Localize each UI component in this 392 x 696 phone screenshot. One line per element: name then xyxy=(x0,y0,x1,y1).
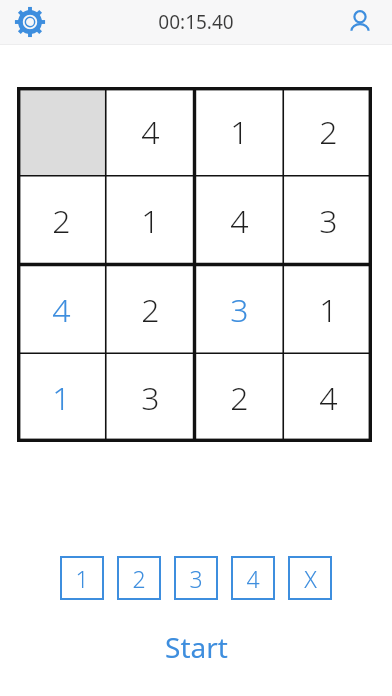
button[interactable]: 3 xyxy=(106,354,195,442)
button[interactable]: 3 xyxy=(174,556,218,600)
staticText: 2 xyxy=(141,288,160,332)
staticText: 1 xyxy=(319,288,338,332)
button[interactable]: 1 xyxy=(195,87,284,176)
button[interactable]: 1 xyxy=(106,176,195,265)
staticText: 00:15.40 xyxy=(158,9,234,35)
staticText: X xyxy=(304,563,317,594)
button[interactable]: Settings xyxy=(12,4,48,40)
button[interactable]: 4 xyxy=(106,87,195,176)
button[interactable]: 4 xyxy=(195,176,284,265)
staticText: 4 xyxy=(230,199,249,243)
button[interactable] xyxy=(17,87,106,176)
button[interactable]: 1 xyxy=(284,265,372,354)
staticText: 3 xyxy=(189,563,203,594)
button[interactable]: 3 xyxy=(195,265,284,354)
button[interactable]: X xyxy=(288,556,332,600)
button[interactable]: 4 xyxy=(231,556,275,600)
staticText: 1 xyxy=(75,563,89,594)
button[interactable]: 3 xyxy=(284,176,372,265)
button[interactable]: 4 xyxy=(17,265,106,354)
staticText: 4 xyxy=(246,563,260,594)
button[interactable]: 2 xyxy=(195,354,284,442)
button[interactable]: 1 xyxy=(60,556,104,600)
button[interactable]: 1 xyxy=(17,354,106,442)
staticText: 2 xyxy=(132,563,146,594)
button[interactable]: 2 xyxy=(17,176,106,265)
staticText: 1 xyxy=(230,110,249,154)
staticText: 3 xyxy=(141,376,160,420)
staticText: 2 xyxy=(319,110,338,154)
staticText: 2 xyxy=(52,199,71,243)
button[interactable]: Start xyxy=(0,624,392,670)
button[interactable]: 2 xyxy=(106,265,195,354)
staticText: Start xyxy=(165,628,228,666)
staticText: 3 xyxy=(319,199,338,243)
button[interactable]: 2 xyxy=(117,556,161,600)
button[interactable]: 4 xyxy=(284,354,372,442)
staticText: 4 xyxy=(319,376,338,420)
staticText: 2 xyxy=(230,376,249,420)
staticText: 4 xyxy=(52,288,71,332)
staticText: 1 xyxy=(141,199,160,243)
button[interactable]: 2 xyxy=(284,87,372,176)
button[interactable]: Profile xyxy=(342,4,378,40)
staticText: 3 xyxy=(230,288,249,332)
staticText: 1 xyxy=(52,376,71,420)
staticText: 4 xyxy=(141,110,160,154)
